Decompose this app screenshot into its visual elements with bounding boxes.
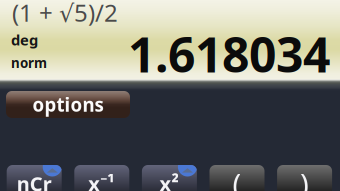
staticText: ): [300, 164, 309, 191]
button[interactable]: ): [277, 165, 332, 191]
button[interactable]: x²: [142, 165, 197, 191]
button[interactable]: x⁻¹: [74, 165, 129, 191]
button[interactable]: (: [209, 165, 264, 191]
staticText: (1 + √5)/2: [12, 0, 118, 28]
staticText: x²: [159, 170, 179, 191]
staticText: deg: [11, 30, 38, 49]
staticText: (: [232, 164, 241, 191]
staticText: options: [32, 92, 103, 117]
button[interactable]: nCr: [7, 165, 62, 191]
button[interactable]: options: [6, 91, 130, 118]
staticText: nCr: [17, 170, 52, 191]
staticText: norm: [11, 54, 47, 72]
staticText: x⁻¹: [88, 170, 115, 191]
staticText: 1.618034: [128, 22, 330, 86]
